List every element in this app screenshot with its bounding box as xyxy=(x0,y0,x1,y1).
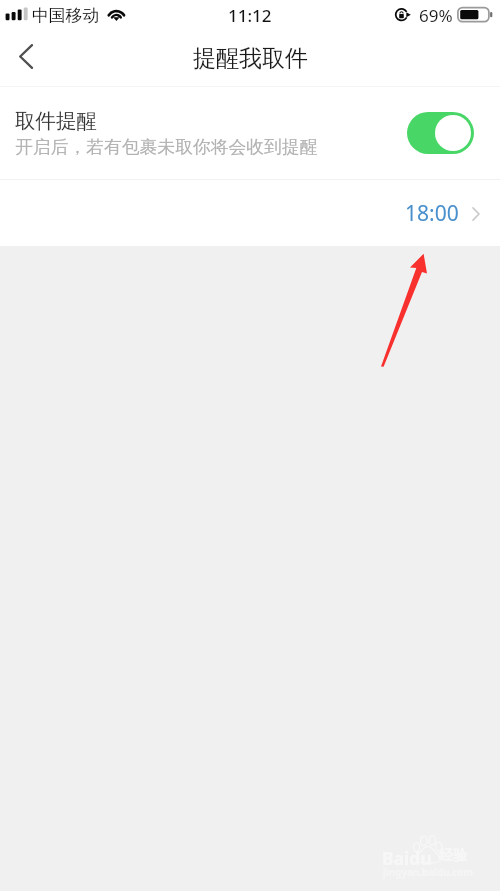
staticText: 取件提醒 xyxy=(15,108,97,134)
staticText: 中国移动 xyxy=(32,5,100,26)
staticText: 11:12 xyxy=(228,4,272,27)
button[interactable]: Back xyxy=(0,33,52,85)
button[interactable]: Toggle pickup reminder xyxy=(407,112,474,154)
button[interactable]: 18:00 xyxy=(0,180,500,246)
staticText: 69% xyxy=(419,4,453,27)
staticText: 开启后，若有包裹未取你将会收到提醒 xyxy=(15,136,318,158)
staticText: 提醒我取件 xyxy=(193,44,308,73)
staticText: 18:00 xyxy=(405,199,459,228)
